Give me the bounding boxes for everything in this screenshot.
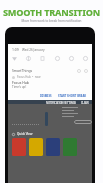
button[interactable]: Quick tile: [29, 138, 43, 156]
staticText: START SHORT BREAK: [58, 94, 87, 98]
staticText: Wed 26 January: [22, 48, 45, 52]
staticText: Quick View: [17, 132, 33, 136]
staticText: Time's up!: [12, 85, 27, 89]
staticText: CLEAR: [81, 101, 89, 104]
staticText: Focus Hub • now: [17, 75, 41, 79]
staticText: SmartThings: [12, 68, 33, 73]
button[interactable]: Quick setting 2: [39, 55, 46, 62]
button[interactable]: Quick setting 5: [82, 55, 89, 62]
button[interactable]: START SHORT BREAK: [57, 94, 88, 98]
staticText: Focus Hub: [12, 80, 29, 85]
staticText: DISMISS: [40, 94, 52, 98]
button[interactable]: CLEAR: [81, 101, 89, 104]
staticText: SMOOTH TRANSITION: [0, 6, 103, 18]
button[interactable]: Quick setting 4: [68, 55, 75, 62]
staticText: NOTIFICATION SETTINGS: [46, 101, 76, 104]
staticText: 1:09: [12, 47, 19, 52]
button[interactable]: Quick tile: [12, 138, 26, 156]
button[interactable]: More: [84, 69, 88, 73]
button[interactable]: Quick setting 0: [11, 55, 18, 62]
button[interactable]: Quick setting 1: [25, 55, 32, 62]
staticText: Move from work to break from notificatio…: [0, 19, 103, 23]
button[interactable]: Action: [74, 120, 92, 124]
button[interactable]: DISMISS: [39, 94, 53, 98]
button[interactable]: NOTIFICATION SETTINGS: [46, 101, 76, 104]
button[interactable]: Collapse: [77, 69, 81, 73]
button[interactable]: Quick setting 3: [54, 55, 61, 62]
